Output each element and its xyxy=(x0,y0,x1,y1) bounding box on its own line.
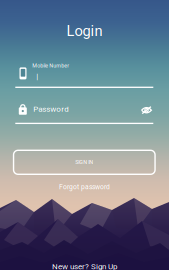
button[interactable]: New user? Sign Up xyxy=(44,261,124,270)
staticText: Login xyxy=(66,22,102,40)
button[interactable]: Mobile Number xyxy=(14,57,155,87)
button[interactable]: Forgot password xyxy=(49,181,119,192)
button[interactable]: SIGN IN xyxy=(13,150,155,174)
staticText: Password xyxy=(33,104,69,114)
button[interactable]: Password xyxy=(14,97,155,119)
button[interactable]: Show password xyxy=(136,101,156,119)
staticText: SIGN IN xyxy=(75,159,93,165)
staticText: Forgot password xyxy=(59,183,110,191)
staticText: Mobile Number xyxy=(32,63,69,69)
staticText: New user? Sign Up xyxy=(52,262,117,270)
staticText: | xyxy=(36,71,38,81)
